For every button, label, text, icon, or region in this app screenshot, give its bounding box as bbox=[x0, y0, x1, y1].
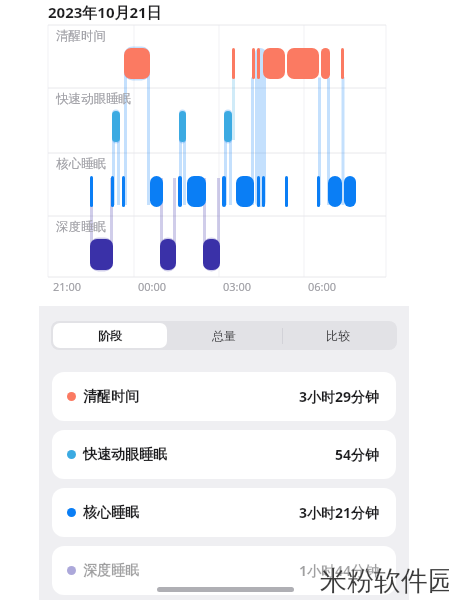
button[interactable]: 比较 bbox=[281, 323, 395, 348]
button[interactable]: 快速动眼睡眠 bbox=[52, 430, 396, 479]
staticText: 3小时21分钟 bbox=[299, 503, 380, 522]
staticText: 00:00 bbox=[138, 279, 167, 294]
staticText: 总量 bbox=[212, 328, 236, 343]
button[interactable]: 清醒时间 bbox=[52, 372, 396, 421]
staticText: 06:00 bbox=[308, 279, 337, 294]
staticText: 1小时44分钟 bbox=[299, 561, 380, 580]
staticText: 深度睡眠 bbox=[56, 219, 106, 235]
button[interactable]: 核心睡眠 bbox=[52, 488, 396, 537]
staticText: 米粉软件园 bbox=[320, 564, 449, 598]
staticText: 03:00 bbox=[223, 279, 252, 294]
staticText: 54分钟 bbox=[335, 445, 380, 464]
staticText: 阶段 bbox=[98, 328, 122, 343]
staticText: 比较 bbox=[326, 328, 350, 343]
staticText: 核心睡眠 bbox=[83, 504, 139, 522]
staticText: 21:00 bbox=[53, 279, 82, 294]
staticText: 3小时29分钟 bbox=[299, 387, 380, 406]
button[interactable]: 深度睡眠 bbox=[52, 546, 396, 595]
staticText: 快速动眼睡眠 bbox=[56, 91, 131, 107]
staticText: 2023年10月21日 bbox=[48, 2, 162, 22]
button[interactable]: 总量 bbox=[167, 323, 281, 348]
staticText: 清醒时间 bbox=[83, 388, 139, 406]
staticText: 核心睡眠 bbox=[56, 156, 106, 172]
staticText: 清醒时间 bbox=[56, 28, 106, 44]
button[interactable]: 阶段 bbox=[53, 323, 167, 348]
staticText: 快速动眼睡眠 bbox=[83, 446, 167, 464]
staticText: 深度睡眠 bbox=[83, 562, 139, 580]
